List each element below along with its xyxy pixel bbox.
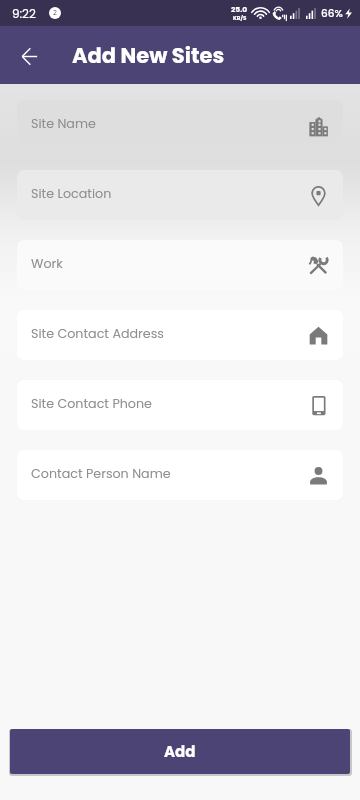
staticText: Site Location — [31, 185, 308, 203]
staticText: KB/S — [233, 14, 247, 22]
staticText: 2 — [53, 8, 58, 18]
button[interactable]: Contact Person Name — [17, 450, 343, 500]
staticText: Site Contact Address — [31, 325, 308, 343]
button[interactable]: Add — [10, 729, 350, 774]
staticText: Add New Sites — [72, 41, 225, 70]
staticText: Site Contact Phone — [31, 395, 308, 413]
button[interactable]: Site Contact Phone — [17, 380, 343, 430]
staticText: 9:22 — [12, 5, 36, 22]
staticText: Site Name — [31, 115, 308, 133]
staticText: 25.0 — [231, 4, 248, 14]
staticText: Work — [31, 255, 308, 273]
staticText: 66% — [321, 6, 343, 21]
button[interactable]: Site Location — [17, 170, 343, 220]
button[interactable]: Back — [0, 26, 58, 84]
button[interactable]: Site Name — [17, 100, 343, 150]
button[interactable]: Site Contact Address — [17, 310, 343, 360]
staticText: Add — [164, 741, 196, 762]
button[interactable]: Work — [17, 240, 343, 290]
staticText: Contact Person Name — [31, 465, 308, 483]
